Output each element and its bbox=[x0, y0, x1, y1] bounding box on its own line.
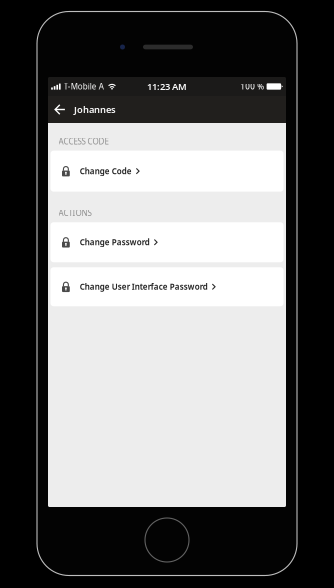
staticText: T-Mobile A bbox=[64, 81, 104, 92]
staticText: Change Password bbox=[80, 237, 150, 247]
staticText: ACTIONS bbox=[58, 208, 91, 218]
staticText: Johannes bbox=[74, 103, 116, 116]
staticText: Change User Interface Password bbox=[80, 281, 208, 292]
staticText: 100 % bbox=[240, 81, 264, 92]
button[interactable]: Back bbox=[51, 100, 69, 118]
staticText: Change Code bbox=[80, 166, 132, 176]
button[interactable]: Change Code bbox=[50, 151, 283, 192]
button[interactable]: Change Password bbox=[50, 222, 283, 262]
button[interactable]: Change User Interface Password bbox=[50, 267, 283, 306]
staticText: 11:23 AM bbox=[147, 80, 187, 93]
staticText: ACCESS CODE bbox=[58, 136, 108, 147]
